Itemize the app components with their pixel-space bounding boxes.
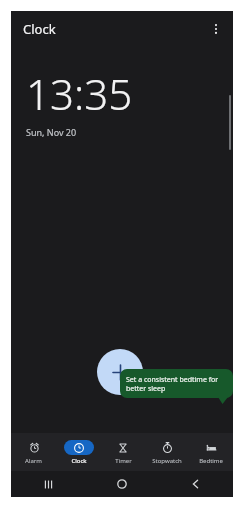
button[interactable]: Add alarm: [97, 349, 143, 395]
button[interactable]: Alarm: [11, 433, 56, 471]
staticText: Set a consistent bedtime for better slee…: [126, 375, 228, 393]
button[interactable]: Stopwatch: [145, 433, 189, 471]
staticText: Clock: [71, 457, 87, 465]
button[interactable]: Set a consistent bedtime for better slee…: [120, 369, 233, 398]
button[interactable]: More options: [203, 16, 229, 42]
staticText: Sun, Nov 20: [26, 126, 77, 138]
staticText: Clock: [23, 20, 56, 38]
staticText: 13:35: [26, 65, 133, 122]
staticText: Stopwatch: [152, 457, 182, 465]
button[interactable]: Bedtime: [189, 433, 233, 471]
button[interactable]: Home: [85, 471, 159, 497]
staticText: Bedtime: [199, 457, 223, 465]
button[interactable]: Clock: [56, 433, 101, 471]
button[interactable]: Back: [159, 471, 233, 497]
button[interactable]: Timer: [101, 433, 145, 471]
staticText: Timer: [115, 457, 132, 465]
button[interactable]: Recent apps: [11, 471, 85, 497]
staticText: Alarm: [25, 457, 42, 465]
